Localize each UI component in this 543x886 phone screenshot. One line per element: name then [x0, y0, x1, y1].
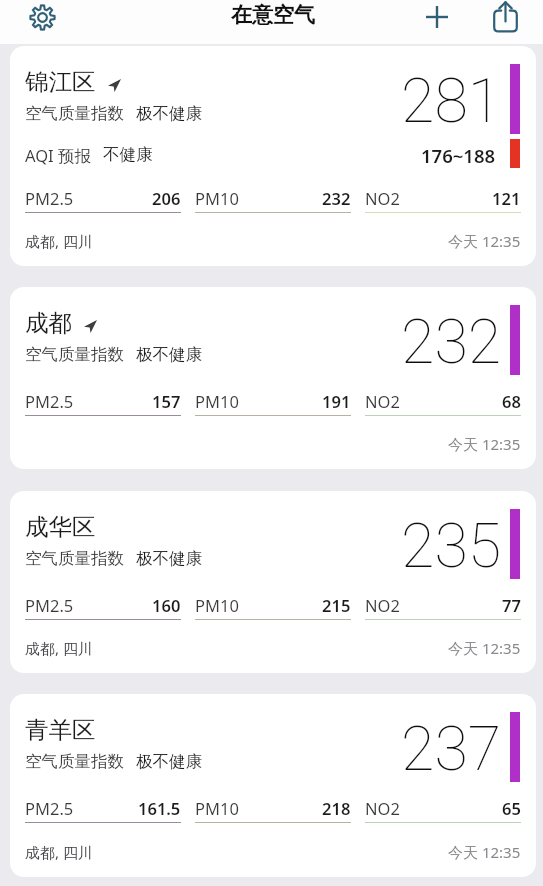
staticText: 232	[322, 187, 351, 209]
staticText: 成都, 四川	[25, 231, 93, 251]
staticText: PM10	[195, 390, 239, 412]
staticText: 157	[152, 390, 181, 412]
staticText: 215	[322, 594, 351, 616]
button[interactable]: Add city	[415, 0, 459, 39]
staticText: 176~188	[421, 143, 496, 168]
staticText: 极不健康	[136, 548, 202, 569]
staticText: NO2	[365, 187, 400, 209]
staticText: PM2.5	[25, 594, 74, 616]
staticText: 65	[502, 797, 521, 819]
staticText: 237	[401, 713, 502, 784]
staticText: 68	[502, 390, 521, 412]
staticText: PM10	[195, 797, 239, 819]
staticText: PM10	[195, 594, 239, 616]
staticText: 锦江区	[25, 67, 96, 97]
staticText: 成都	[25, 308, 72, 338]
staticText: 极不健康	[136, 103, 202, 124]
staticText: 191	[322, 390, 351, 412]
staticText: 空气质量指数	[25, 344, 124, 365]
staticText: 空气质量指数	[25, 103, 124, 124]
staticText: 218	[322, 797, 351, 819]
staticText: 青羊区	[25, 715, 96, 745]
staticText: 232	[401, 306, 502, 377]
staticText: 空气质量指数	[25, 548, 124, 569]
staticText: 121	[492, 187, 521, 209]
staticText: 77	[502, 594, 521, 616]
button[interactable]: 锦江区	[10, 46, 536, 266]
staticText: NO2	[365, 797, 400, 819]
staticText: 空气质量指数	[25, 751, 124, 772]
staticText: 极不健康	[136, 344, 202, 365]
staticText: PM2.5	[25, 390, 74, 412]
staticText: 235	[401, 510, 502, 581]
staticText: 今天 12:35	[448, 231, 521, 251]
button[interactable]: Share	[483, 0, 527, 38]
staticText: PM10	[195, 187, 239, 209]
button[interactable]: Settings	[20, 0, 65, 39]
staticText: 在意空气	[231, 2, 315, 28]
staticText: 206	[152, 187, 181, 209]
staticText: NO2	[365, 390, 400, 412]
staticText: PM2.5	[25, 187, 74, 209]
staticText: 不健康	[103, 144, 153, 165]
staticText: 极不健康	[136, 751, 202, 772]
staticText: 今天 12:35	[448, 434, 521, 454]
staticText: 成都, 四川	[25, 842, 93, 862]
button[interactable]: 成华区	[10, 491, 536, 673]
staticText: NO2	[365, 594, 400, 616]
button[interactable]: 成都	[10, 287, 536, 469]
staticText: PM2.5	[25, 797, 74, 819]
staticText: 今天 12:35	[448, 842, 521, 862]
staticText: 281	[401, 65, 502, 136]
staticText: 160	[152, 594, 181, 616]
button[interactable]: 青羊区	[10, 694, 536, 877]
staticText: 今天 12:35	[448, 638, 521, 658]
staticText: 成都, 四川	[25, 638, 93, 658]
staticText: 161.5	[138, 797, 181, 819]
staticText: AQI 预报	[25, 144, 91, 167]
staticText: 成华区	[25, 512, 96, 542]
